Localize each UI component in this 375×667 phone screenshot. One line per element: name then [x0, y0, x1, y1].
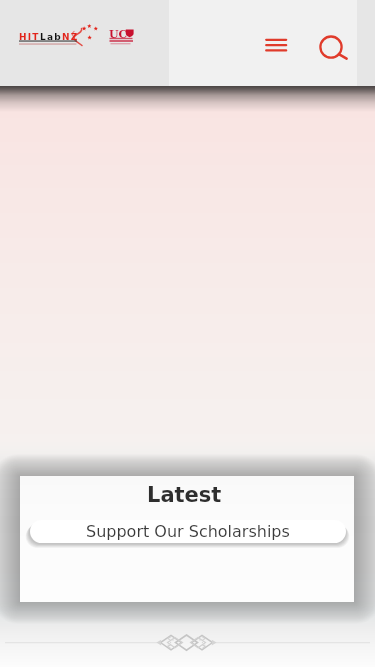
staticText: Latest: [147, 483, 222, 507]
staticText: Lab: [40, 32, 62, 42]
staticText: HIT: [19, 32, 40, 42]
staticText: NZ: [62, 32, 79, 42]
button[interactable]: Open menu: [259, 31, 293, 59]
button[interactable]: Support Our Scholarships: [30, 520, 346, 543]
button[interactable]: Search: [313, 29, 351, 67]
staticText: UC: [109, 28, 128, 41]
staticText: Support Our Scholarships: [86, 522, 290, 541]
